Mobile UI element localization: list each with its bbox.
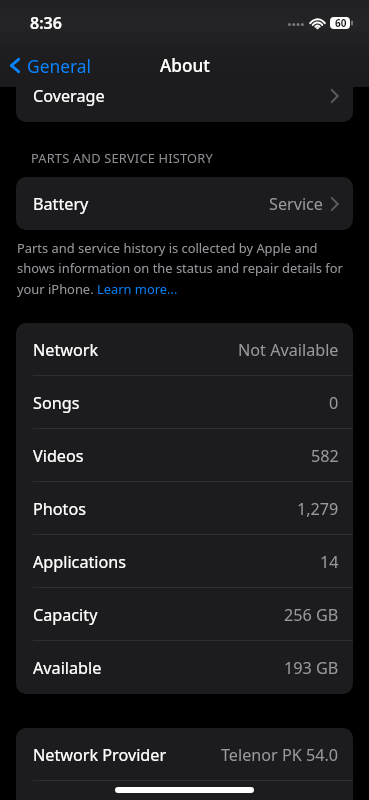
staticText: Telenor PK 54.0 (221, 744, 339, 766)
button[interactable]: Available (16, 641, 353, 694)
staticText: 1,279 (297, 498, 339, 520)
staticText: Available (33, 657, 102, 679)
button[interactable]: Photos (16, 482, 353, 535)
staticText: General (27, 54, 92, 78)
staticText: PARTS AND SERVICE HISTORY (31, 149, 213, 166)
staticText: About (160, 54, 210, 77)
staticText: Network (33, 339, 99, 361)
button[interactable]: Network Provider (16, 728, 353, 781)
button[interactable]: Coverage (16, 69, 353, 122)
staticText: 8:36 (30, 12, 62, 34)
staticText: Coverage (33, 85, 105, 107)
staticText: 14 (320, 551, 339, 573)
staticText: Parts and service history is collected b… (17, 239, 352, 298)
staticText: 256 GB (284, 604, 339, 626)
staticText: 0 (329, 392, 339, 414)
staticText: Not Available (238, 339, 339, 361)
staticText: Service (269, 193, 324, 215)
button[interactable]: Capacity (16, 588, 353, 641)
staticText: Songs (33, 392, 80, 414)
button[interactable]: Applications (16, 535, 353, 588)
staticText: Capacity (33, 604, 98, 626)
button[interactable]: Videos (16, 429, 353, 482)
staticText: 60 (335, 16, 347, 30)
staticText: Photos (33, 498, 86, 520)
button[interactable]: Back to General (4, 52, 94, 82)
button[interactable]: Songs (16, 376, 353, 429)
staticText: Battery (33, 193, 89, 215)
button[interactable]: Network (16, 323, 353, 376)
button[interactable]: Carrier Lock (16, 781, 353, 800)
staticText: Network Provider (33, 744, 167, 766)
button[interactable]: Battery (16, 177, 353, 230)
staticText: Videos (33, 445, 84, 467)
staticText: Applications (33, 551, 127, 573)
staticText: 582 (311, 445, 339, 467)
staticText: 193 GB (284, 657, 339, 679)
